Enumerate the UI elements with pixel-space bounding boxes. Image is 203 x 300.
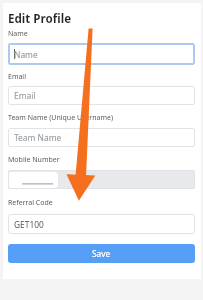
staticText: Name	[8, 29, 28, 39]
button[interactable]: GET100	[8, 214, 195, 234]
staticText: Save	[92, 248, 111, 259]
button[interactable]	[8, 170, 195, 189]
staticText: Referral Code	[8, 198, 53, 208]
staticText: Name	[14, 49, 38, 60]
staticText: Email	[8, 72, 26, 82]
staticText: Team Name	[14, 132, 62, 143]
button[interactable]: Team Name	[8, 128, 195, 147]
staticText: Edit Profile	[8, 11, 72, 27]
button[interactable]: Email	[8, 86, 195, 105]
staticText: GET100	[14, 219, 44, 230]
button[interactable]: Name	[8, 43, 195, 65]
staticText: Email	[14, 90, 36, 101]
staticText: Team Name (Unique Username)	[8, 113, 114, 123]
staticText: Mobile Number	[8, 155, 60, 165]
button[interactable]: Save	[8, 244, 195, 263]
